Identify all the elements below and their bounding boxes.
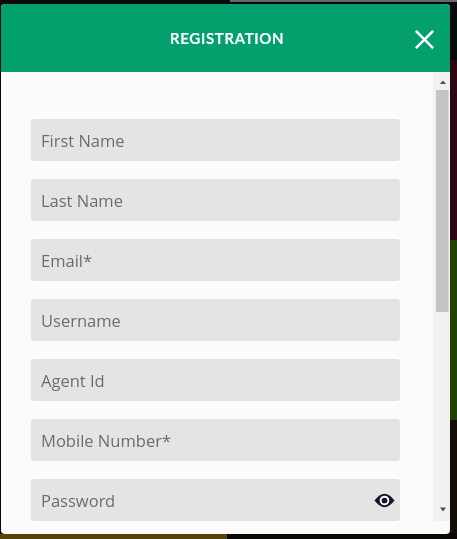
button[interactable]: Show password <box>371 487 397 513</box>
staticText: Agent Id <box>41 369 105 391</box>
button[interactable]: Last Name <box>31 179 400 221</box>
button[interactable]: Close <box>406 20 442 56</box>
button[interactable]: Username <box>31 299 400 341</box>
button[interactable]: Mobile Number* <box>31 419 400 461</box>
staticText: Username <box>41 309 121 331</box>
button[interactable]: First Name <box>31 119 400 161</box>
button[interactable]: Agent Id <box>31 359 400 401</box>
staticText: Last Name <box>41 189 123 211</box>
staticText: Mobile Number* <box>41 429 171 451</box>
staticText: Email* <box>41 249 93 271</box>
staticText: Password <box>41 489 116 511</box>
button[interactable]: Email* <box>31 239 400 281</box>
staticText: REGISTRATION <box>170 29 285 47</box>
staticText: First Name <box>41 129 125 151</box>
button[interactable]: Password <box>31 479 400 521</box>
